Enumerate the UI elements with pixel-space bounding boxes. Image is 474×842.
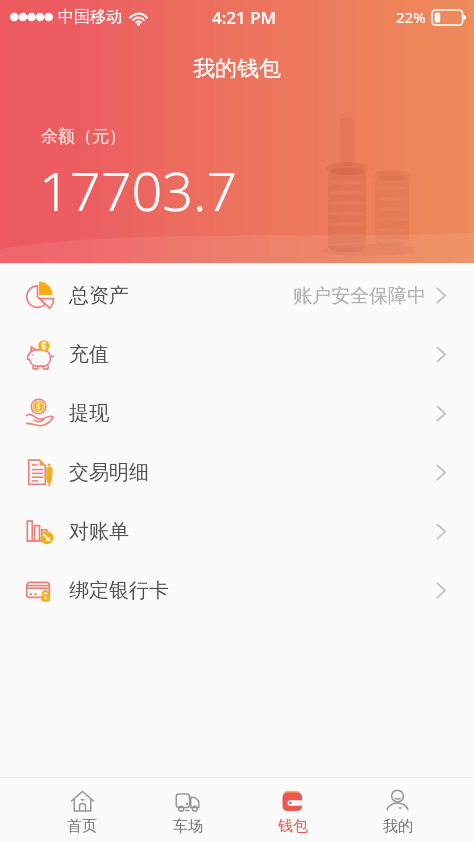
staticText: 账户安全保障中 <box>293 284 426 308</box>
staticText: 4:21 PM <box>212 6 277 29</box>
button[interactable]: 钱包 <box>240 778 345 842</box>
staticText: 总资产 <box>69 283 129 308</box>
staticText: 绑定银行卡 <box>69 578 169 603</box>
staticText: 交易明细 <box>69 460 149 485</box>
staticText: 17703.7 <box>39 153 238 227</box>
staticText: 提现 <box>69 401 109 426</box>
staticText: 22% <box>396 7 426 27</box>
button[interactable]: 交易明细 <box>0 443 474 502</box>
staticText: 首页 <box>67 817 97 836</box>
button[interactable]: 首页 <box>29 778 135 842</box>
staticText: 余额（元） <box>41 126 126 147</box>
button[interactable]: 充值 <box>0 325 474 384</box>
staticText: 充值 <box>69 342 109 367</box>
button[interactable]: 总资产 <box>0 266 474 325</box>
staticText: 车场 <box>173 817 203 836</box>
button[interactable]: 提现 <box>0 384 474 443</box>
button[interactable]: 车场 <box>135 778 240 842</box>
button[interactable]: 我的 <box>345 778 450 842</box>
button[interactable]: 绑定银行卡 <box>0 561 474 620</box>
button[interactable]: 对账单 <box>0 502 474 561</box>
staticText: 我的 <box>383 817 413 836</box>
staticText: 我的钱包 <box>0 55 474 83</box>
staticText: 钱包 <box>278 817 308 836</box>
staticText: 对账单 <box>69 519 129 544</box>
staticText: 中国移动 <box>58 7 122 27</box>
